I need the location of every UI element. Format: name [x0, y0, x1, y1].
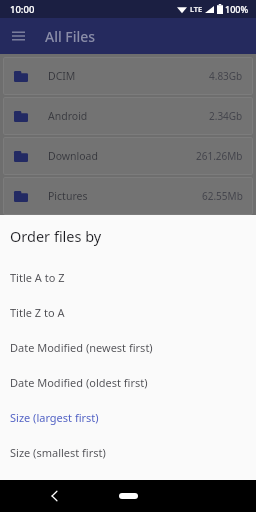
staticText: Music — [48, 309, 77, 323]
button[interactable]: Size (largest first) — [0, 400, 256, 435]
staticText: Download — [48, 149, 98, 163]
staticText: 100% — [225, 3, 249, 15]
staticText: Movies — [48, 269, 83, 283]
staticText: Pictures — [48, 189, 88, 203]
staticText: Date Modified (oldest first) — [10, 375, 148, 390]
button[interactable]: Android — [3, 97, 253, 135]
staticText: Date Modified (newest first) — [10, 340, 153, 355]
button[interactable]: Back — [44, 486, 64, 506]
button[interactable]: Snapseed — [3, 217, 253, 255]
staticText: Size (smallest first) — [10, 445, 106, 460]
staticText: All Files — [45, 27, 96, 46]
staticText: Title A to Z — [10, 270, 65, 285]
staticText: Title Z to A — [10, 305, 65, 320]
staticText: 261.26Mb — [196, 149, 243, 163]
staticText: 62.55Mb — [202, 189, 243, 203]
staticText: LTE — [190, 4, 203, 14]
button[interactable]: Pictures — [3, 177, 253, 215]
staticText: 4.83Gb — [209, 69, 243, 83]
button[interactable]: Download — [3, 137, 253, 175]
staticText: Size (largest first) — [10, 410, 99, 425]
button[interactable]: Date Modified (newest first) — [0, 330, 256, 365]
button[interactable]: Music — [3, 297, 253, 335]
button[interactable]: Date Modified (oldest first) — [0, 365, 256, 400]
staticText: Order files by — [10, 226, 102, 246]
button[interactable]: DCIM — [3, 57, 253, 95]
button[interactable]: Movies — [3, 257, 253, 295]
button[interactable]: Title A to Z — [0, 260, 256, 295]
staticText: 10:00 — [10, 3, 35, 16]
button[interactable]: Open navigation drawer — [7, 25, 29, 47]
button[interactable]: Size (smallest first) — [0, 435, 256, 470]
staticText: DCIM — [48, 69, 76, 83]
staticText: Snapseed — [48, 229, 96, 243]
staticText: Android — [48, 109, 88, 123]
button[interactable]: Title Z to A — [0, 295, 256, 330]
button[interactable]: Home — [108, 486, 148, 506]
staticText: 2.34Gb — [209, 109, 243, 123]
